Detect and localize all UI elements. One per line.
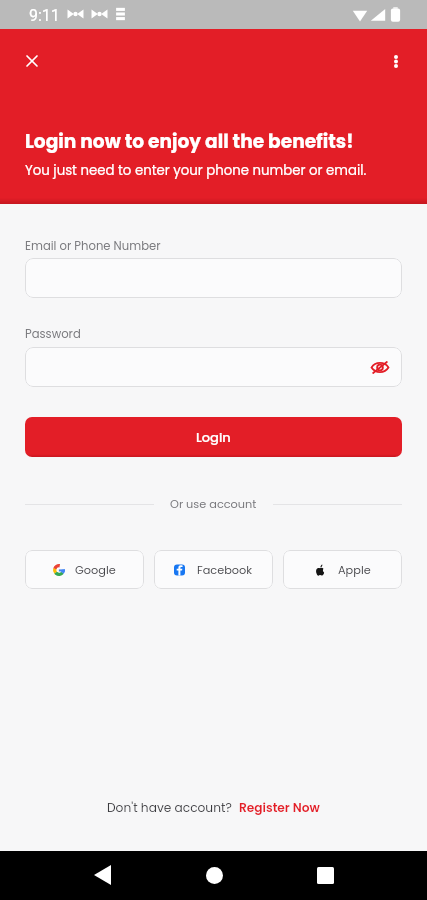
- button[interactable]: Close: [19, 48, 45, 74]
- staticText: Apple: [338, 562, 371, 578]
- button[interactable]: Back: [85, 858, 119, 892]
- button[interactable]: More options: [383, 48, 409, 74]
- staticText: Login: [196, 428, 231, 446]
- staticText: Or use account: [170, 496, 257, 512]
- staticText: 9:11: [29, 6, 60, 25]
- staticText: Facebook: [197, 562, 253, 578]
- button[interactable]: Toggle password visibility: [25, 347, 402, 387]
- staticText: Google: [75, 562, 116, 578]
- staticText: You just need to enter your phone number…: [25, 161, 367, 180]
- staticText: Email or Phone Number: [25, 238, 161, 254]
- button[interactable]: Register Now: [239, 799, 320, 816]
- button[interactable]: Home: [197, 858, 231, 892]
- button[interactable]: Google: [25, 550, 144, 589]
- button[interactable]: [25, 258, 402, 298]
- staticText: Register Now: [239, 799, 320, 816]
- button[interactable]: Toggle password visibility: [369, 356, 391, 378]
- staticText: Don't have account?: [107, 799, 232, 816]
- button[interactable]: Apple: [283, 550, 402, 589]
- button[interactable]: Login: [25, 417, 402, 457]
- staticText: Login now to enjoy all the benefits!: [25, 128, 354, 154]
- staticText: Password: [25, 326, 81, 342]
- button[interactable]: Recents: [308, 858, 342, 892]
- button[interactable]: Facebook: [154, 550, 273, 589]
